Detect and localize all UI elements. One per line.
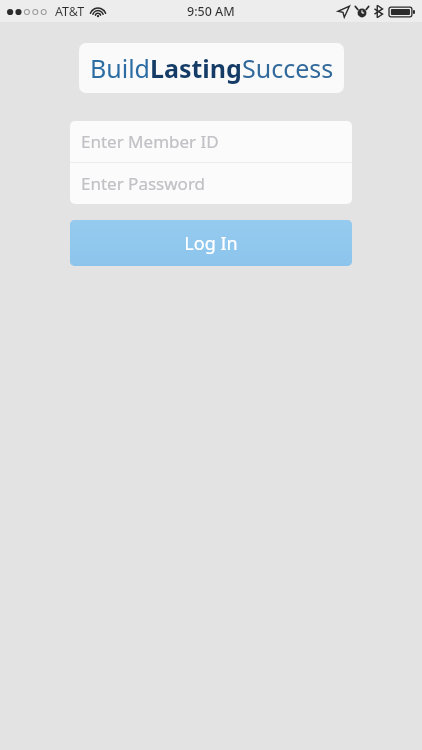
staticText: Log In: [184, 231, 238, 256]
button[interactable]: Log In: [70, 220, 352, 266]
staticText: Lasting: [150, 51, 242, 85]
staticText: 9:50 AM: [187, 3, 235, 20]
button[interactable]: Enter Password: [70, 163, 352, 204]
staticText: Enter Member ID: [81, 130, 219, 153]
staticText: AT&T: [55, 3, 85, 20]
button[interactable]: Enter Member ID: [70, 121, 352, 162]
staticText: Build: [90, 51, 150, 85]
staticText: Success: [242, 51, 334, 85]
staticText: Enter Password: [81, 172, 206, 195]
